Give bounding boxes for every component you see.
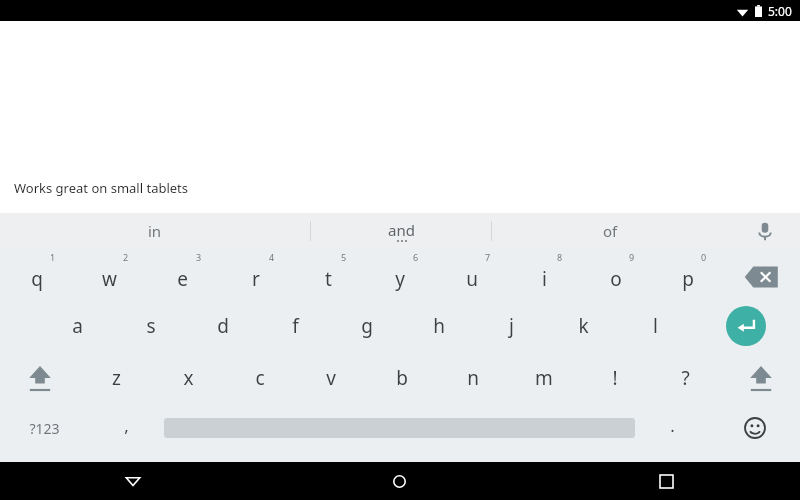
button[interactable]: 1	[0, 248, 73, 300]
staticText: and	[388, 220, 415, 240]
staticText: ,	[124, 414, 129, 437]
staticText: v	[326, 365, 336, 391]
staticText: 5	[341, 251, 347, 263]
staticText: a	[72, 313, 83, 339]
staticText: 4	[269, 251, 275, 263]
button[interactable]: b	[366, 352, 437, 404]
button[interactable]: in	[0, 213, 310, 248]
button[interactable]: of	[492, 213, 729, 248]
button[interactable]: v	[295, 352, 366, 404]
button[interactable]: Emoji	[710, 404, 800, 452]
button[interactable]: Enter	[691, 300, 800, 352]
button[interactable]: ?123	[0, 404, 89, 452]
staticText: 7	[485, 251, 491, 263]
staticText: d	[217, 313, 229, 339]
button[interactable]: c	[224, 352, 295, 404]
staticText: ?	[681, 365, 690, 391]
button[interactable]: k	[547, 300, 619, 352]
button[interactable]: j	[475, 300, 547, 352]
button[interactable]: 4	[219, 248, 292, 300]
staticText: u	[466, 266, 478, 292]
staticText: n	[467, 365, 479, 391]
button[interactable]: Recent apps	[533, 462, 800, 500]
staticText: r	[252, 266, 260, 292]
staticText: 9	[629, 251, 635, 263]
button[interactable]: 7	[436, 248, 508, 300]
button[interactable]: Back	[0, 462, 266, 500]
button[interactable]: Shift	[721, 352, 800, 404]
button[interactable]: 6	[364, 248, 436, 300]
button[interactable]: !	[579, 352, 650, 404]
button[interactable]: 0	[652, 248, 724, 300]
button[interactable]: and	[311, 213, 491, 248]
button[interactable]: l	[619, 300, 691, 352]
staticText: Works great on small tablets	[14, 179, 189, 197]
button[interactable]: Backspace	[724, 248, 800, 300]
staticText: in	[148, 221, 162, 241]
staticText: g	[361, 313, 373, 339]
button[interactable]: Home	[266, 462, 533, 500]
staticText: 8	[557, 251, 563, 263]
staticText: 0	[701, 251, 707, 263]
button[interactable]: ?	[650, 352, 721, 404]
button[interactable]: m	[508, 352, 579, 404]
button[interactable]: n	[437, 352, 508, 404]
button[interactable]: f	[259, 300, 331, 352]
staticText: b	[396, 365, 408, 391]
button[interactable]: 2	[73, 248, 146, 300]
staticText: x	[183, 365, 194, 391]
staticText: y	[395, 266, 405, 292]
staticText: 6	[413, 251, 419, 263]
button[interactable]: ,	[89, 404, 164, 452]
staticText: 5:00	[768, 3, 792, 19]
staticText: 2	[123, 251, 129, 263]
staticText: 1	[50, 251, 56, 263]
staticText: e	[177, 266, 188, 292]
button[interactable]: d	[187, 300, 259, 352]
staticText: ?123	[29, 419, 60, 438]
button[interactable]: x	[152, 352, 224, 404]
staticText: 3	[196, 251, 202, 263]
staticText: s	[146, 313, 156, 339]
staticText: l	[653, 313, 658, 339]
button[interactable]: g	[331, 300, 403, 352]
button[interactable]: 5	[292, 248, 364, 300]
staticText: w	[102, 266, 117, 292]
staticText: m	[535, 365, 553, 391]
button[interactable]: a	[41, 300, 114, 352]
button[interactable]: Shift	[0, 352, 80, 404]
staticText: t	[325, 266, 332, 292]
button[interactable]: h	[403, 300, 475, 352]
staticText: z	[112, 365, 121, 391]
staticText: !	[612, 365, 618, 391]
staticText: p	[682, 266, 694, 292]
button[interactable]	[164, 404, 635, 452]
button[interactable]: s	[114, 300, 187, 352]
button[interactable]: .	[635, 404, 710, 452]
button[interactable]: Voice input	[729, 213, 800, 248]
staticText: h	[433, 313, 445, 339]
staticText: .	[670, 414, 675, 437]
staticText: q	[31, 266, 43, 292]
button[interactable]: 3	[146, 248, 219, 300]
staticText: j	[509, 313, 514, 339]
button[interactable]: z	[80, 352, 152, 404]
staticText: i	[542, 266, 547, 292]
staticText: o	[610, 266, 622, 292]
staticText: f	[292, 313, 299, 339]
staticText: k	[578, 313, 589, 339]
button[interactable]: 9	[580, 248, 652, 300]
staticText: of	[603, 221, 618, 241]
button[interactable]: 8	[508, 248, 580, 300]
staticText: c	[255, 365, 265, 391]
